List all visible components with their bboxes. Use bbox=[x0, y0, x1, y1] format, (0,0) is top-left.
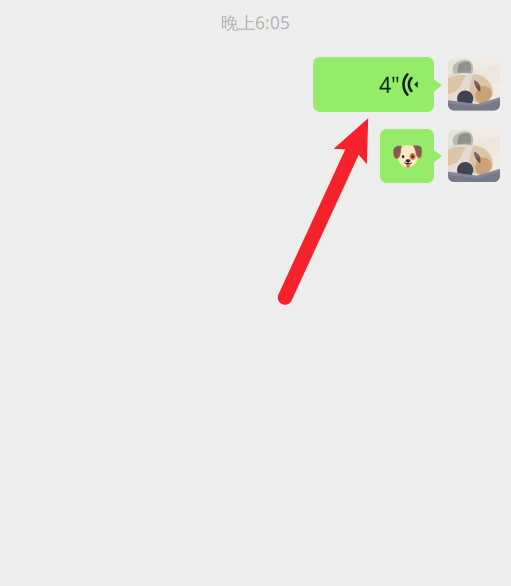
staticText: 🐶 bbox=[390, 141, 423, 171]
button[interactable]: 4" bbox=[313, 57, 500, 112]
staticText: 4" bbox=[379, 70, 400, 99]
staticText: 晚上6:05 bbox=[221, 11, 290, 34]
button[interactable]: 🐶 bbox=[380, 129, 500, 183]
